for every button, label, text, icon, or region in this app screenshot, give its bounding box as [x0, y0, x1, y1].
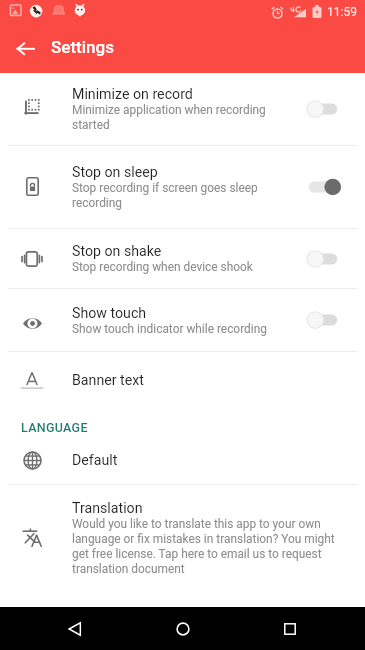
button[interactable]: Default: [0, 436, 365, 484]
button[interactable]: Minimize on record: [0, 73, 365, 145]
staticText: Minimize application when recording star…: [72, 103, 299, 132]
staticText: Stop recording when device shook: [72, 260, 253, 274]
button[interactable]: Toggle off: [305, 245, 341, 273]
button[interactable]: Back: [43, 607, 107, 650]
button[interactable]: Back: [0, 23, 51, 73]
button[interactable]: Translation: [0, 485, 365, 590]
button[interactable]: Home: [151, 607, 215, 650]
button[interactable]: Stop on sleep: [0, 146, 365, 228]
staticText: Stop on sleep: [72, 164, 158, 181]
button[interactable]: Toggle on: [305, 173, 341, 201]
button[interactable]: Toggle off: [305, 306, 341, 334]
button[interactable]: Stop on shake: [0, 229, 365, 288]
staticText: Show touch indicator while recording: [72, 322, 267, 336]
staticText: 11:59: [327, 5, 357, 19]
staticText: Stop on shake: [72, 243, 162, 260]
staticText: Show touch: [72, 305, 147, 322]
staticText: Would you like to translate this app to …: [72, 517, 340, 576]
staticText: Default: [72, 452, 118, 469]
button[interactable]: Banner text: [0, 352, 365, 408]
staticText: Settings: [51, 37, 114, 57]
button[interactable]: Show touch: [0, 289, 365, 351]
staticText: Minimize on record: [72, 86, 193, 103]
staticText: LANGUAGE: [21, 420, 88, 435]
button[interactable]: Toggle off: [305, 95, 341, 123]
staticText: Translation: [72, 500, 143, 517]
staticText: Stop recording if screen goes sleep reco…: [72, 181, 299, 210]
staticText: Banner text: [72, 372, 144, 389]
button[interactable]: Recents: [258, 607, 322, 650]
